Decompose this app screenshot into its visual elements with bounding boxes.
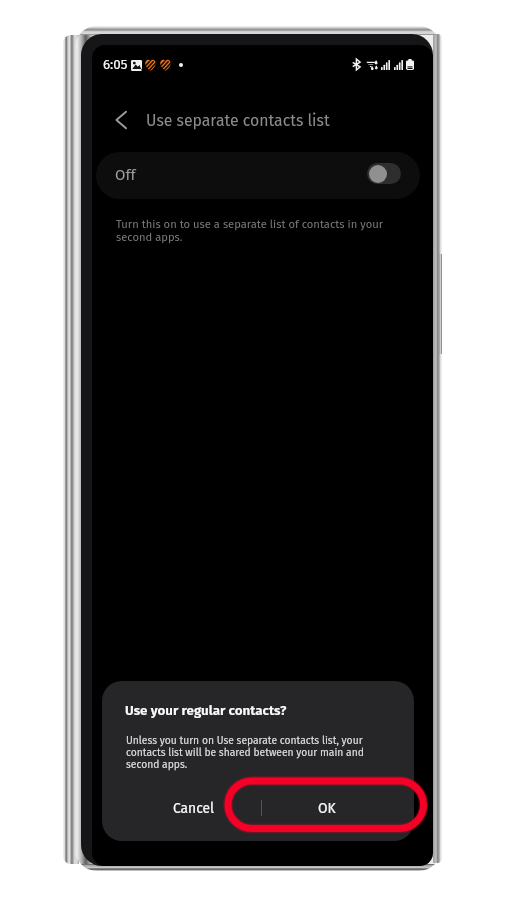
staticText: contacts list will be shared between you…: [126, 746, 364, 758]
button[interactable]: OK: [263, 788, 390, 828]
button[interactable]: Off: [96, 152, 420, 199]
button[interactable]: Cancel: [121, 788, 266, 828]
staticText: OK: [318, 800, 336, 817]
staticText: 6:05: [103, 57, 128, 73]
staticText: Use separate contacts list: [146, 111, 330, 130]
staticText: Unless you turn on Use separate contacts…: [126, 734, 363, 746]
staticText: Use your regular contacts?: [125, 702, 287, 718]
button[interactable]: Back: [99, 98, 143, 142]
staticText: Cancel: [173, 800, 215, 817]
staticText: Turn this on to use a separate list of c…: [116, 218, 384, 231]
staticText: second apps.: [116, 231, 183, 244]
staticText: second apps.: [126, 758, 188, 770]
staticText: Off: [115, 166, 136, 184]
